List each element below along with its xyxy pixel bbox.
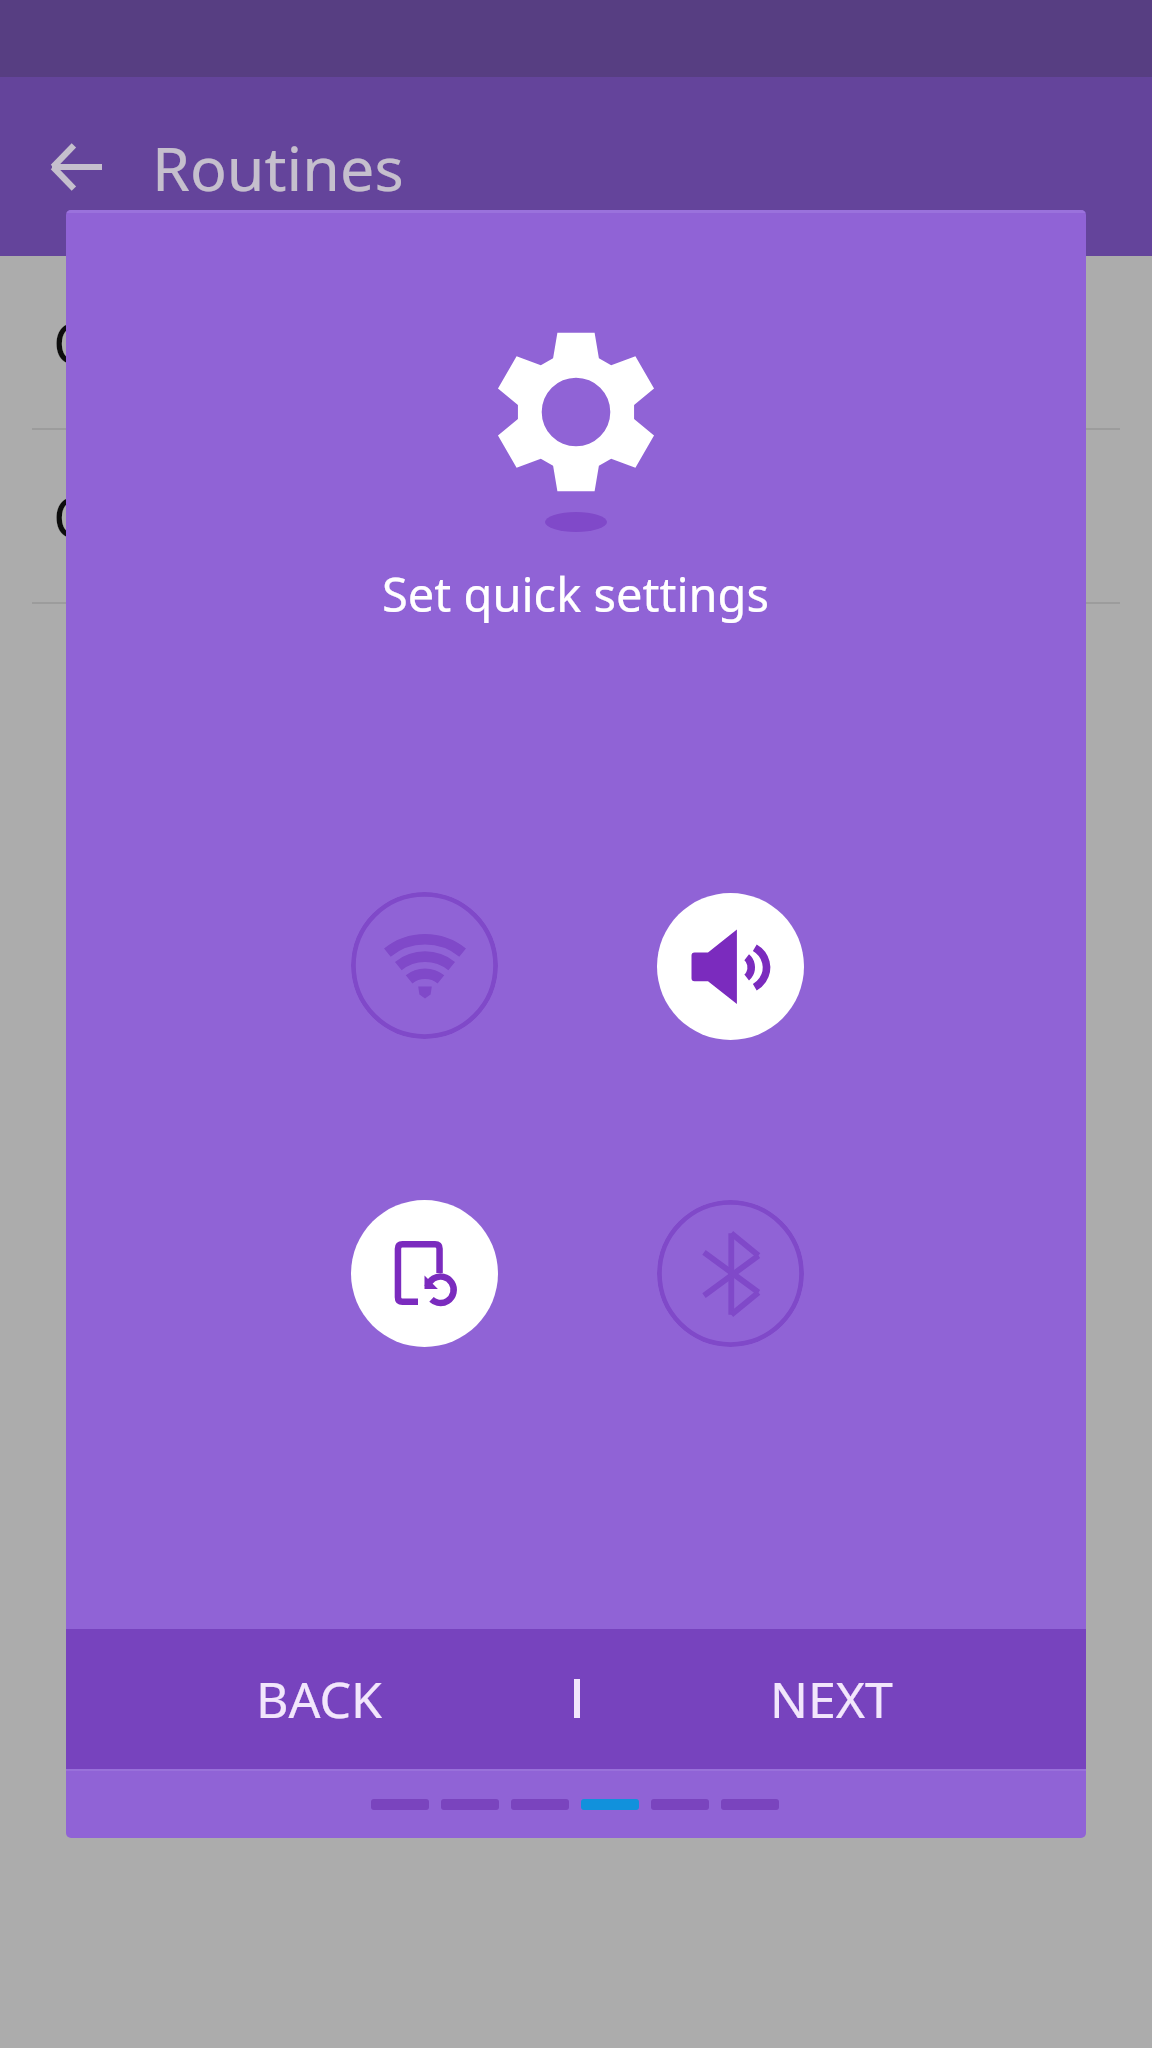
staticText: NEXT	[770, 1665, 893, 1733]
button[interactable]: BACK	[189, 1629, 449, 1769]
button[interactable]: Page 4	[581, 1799, 639, 1810]
button[interactable]: Connected to Wi-Fi	[0, 430, 1152, 602]
staticText: BACK	[256, 1665, 382, 1733]
staticText: Routines	[152, 126, 404, 209]
staticText: Charging	[53, 303, 300, 381]
button[interactable]: Auto-rotate	[351, 1200, 498, 1347]
button[interactable]: Bluetooth	[657, 1200, 804, 1347]
staticText: Connected to Wi-Fi	[53, 477, 557, 555]
button[interactable]: Back	[29, 119, 125, 215]
button[interactable]: NEXT	[701, 1629, 961, 1769]
button[interactable]: Charging	[0, 256, 1152, 428]
staticText: Set quick settings	[382, 562, 769, 626]
button[interactable]: Wi-Fi	[351, 892, 498, 1039]
button[interactable]: Volume	[657, 893, 804, 1040]
